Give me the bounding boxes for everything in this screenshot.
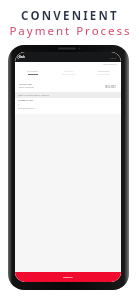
staticText: Date: Thursday xyxy=(19,86,34,89)
staticText: Virtual Visit xyxy=(19,82,33,85)
staticText: $ xyxy=(18,103,20,106)
other: Back xyxy=(17,56,19,59)
staticText: Total Balance xyxy=(103,63,117,66)
staticText: PAYMENT xyxy=(27,69,39,72)
staticText: CONVENIENT xyxy=(21,8,119,24)
button[interactable]: Done xyxy=(110,56,117,59)
staticText: REVIEW xyxy=(64,69,74,72)
staticText: Payment Process xyxy=(9,23,132,39)
button[interactable]: CONFIRM xyxy=(86,69,121,75)
staticText: $0.00 xyxy=(105,84,116,90)
button[interactable]: Back xyxy=(17,55,25,59)
staticText: Payment Amt xyxy=(18,99,33,102)
button[interactable]: Continue xyxy=(15,272,121,282)
staticText: SELECT YOUR PAYMENT AMOUNT xyxy=(18,94,50,97)
button[interactable]: PAYMENT xyxy=(15,69,51,75)
button[interactable]: REVIEW xyxy=(51,69,86,75)
staticText: Continue xyxy=(63,276,73,279)
staticText: Back xyxy=(19,55,25,59)
staticText: CONFIRM xyxy=(98,69,110,72)
staticText: Payment process xyxy=(18,107,35,110)
